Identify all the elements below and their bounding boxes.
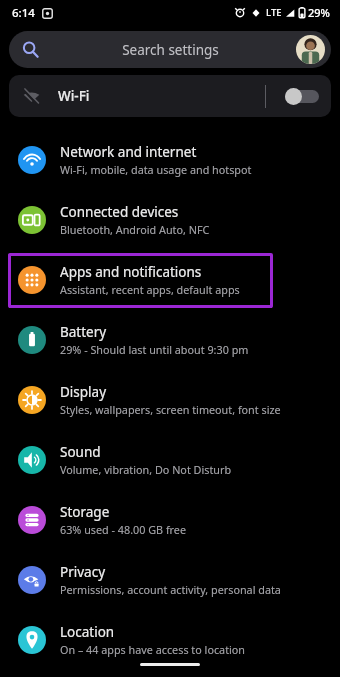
staticText: Location (60, 623, 115, 641)
staticText: 63% used - 48.00 GB free (60, 522, 187, 537)
staticText: 6:14 (12, 5, 35, 21)
button[interactable]: Display (0, 370, 340, 430)
button[interactable]: Wi-Fi (22, 75, 331, 117)
staticText: Assistant, recent apps, default apps (60, 282, 240, 297)
staticText: Wi-Fi (58, 87, 90, 105)
staticText: Styles, wallpapers, screen timeout, font… (60, 402, 281, 417)
staticText: 29% - Should last until about 9:30 pm (60, 342, 249, 357)
staticText: On – 44 apps have access to location (60, 642, 246, 657)
button[interactable]: Connected devices (0, 190, 340, 250)
staticText: Wi-Fi, mobile, data usage and hotspot (60, 162, 252, 177)
staticText: Battery (60, 323, 107, 341)
staticText: 29% (308, 5, 330, 20)
other: Search (22, 41, 39, 58)
button[interactable]: Privacy (0, 550, 340, 610)
staticText: Bluetooth, Android Auto, NFC (60, 222, 210, 237)
button[interactable]: Storage (0, 490, 340, 550)
button[interactable]: Wi-Fi toggle (285, 88, 319, 105)
staticText: Apps and notifications (60, 263, 202, 281)
staticText: Sound (60, 443, 101, 461)
button[interactable]: Network and internet (0, 130, 340, 190)
staticText: Connected devices (60, 203, 179, 221)
staticText: Volume, vibration, Do Not Disturb (60, 462, 232, 477)
button[interactable]: Sound (0, 430, 340, 490)
button[interactable]: Battery (0, 310, 340, 370)
button[interactable]: Apps and notifications (0, 250, 340, 310)
staticText: Permissions, account activity, personal … (60, 582, 281, 597)
button[interactable]: Search (9, 31, 331, 68)
button[interactable]: Account (296, 35, 325, 64)
staticText: Network and internet (60, 143, 197, 161)
staticText: Search settings (122, 41, 219, 59)
staticText: Display (60, 383, 107, 401)
staticText: LTE (266, 6, 282, 19)
staticText: Privacy (60, 563, 106, 581)
button[interactable]: Location (0, 610, 340, 670)
staticText: Storage (60, 503, 110, 521)
